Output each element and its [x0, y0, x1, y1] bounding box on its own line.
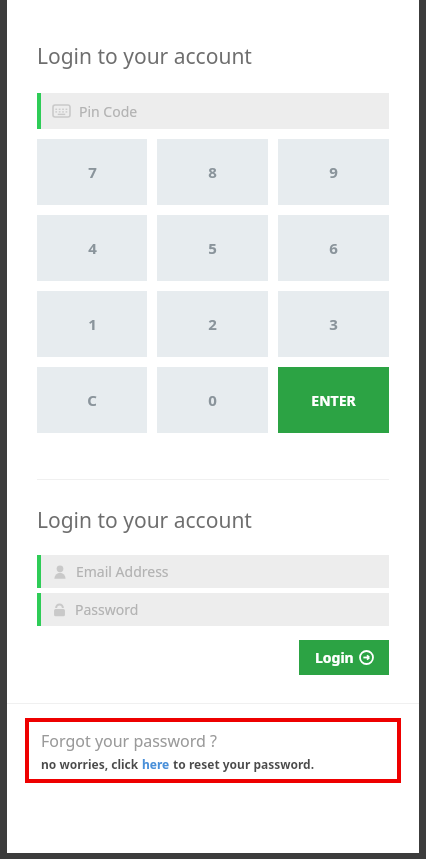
- staticText: 7: [88, 162, 97, 182]
- button[interactable]: C: [37, 367, 147, 433]
- staticText: to reset your password.: [170, 756, 315, 772]
- button[interactable]: 2: [157, 291, 268, 357]
- staticText: Login to your account: [37, 506, 252, 535]
- staticText: 6: [329, 238, 338, 258]
- staticText: Forgot your password ?: [41, 730, 218, 752]
- button[interactable]: here: [142, 756, 170, 772]
- button[interactable]: 3: [278, 291, 389, 357]
- staticText: 5: [208, 238, 217, 258]
- staticText: Login to your account: [37, 42, 252, 71]
- staticText: 3: [329, 314, 338, 334]
- staticText: 2: [208, 314, 217, 334]
- button[interactable]: Email Address: [37, 555, 389, 588]
- button[interactable]: 1: [37, 291, 147, 357]
- button[interactable]: 9: [278, 139, 389, 205]
- button[interactable]: Login: [299, 640, 389, 675]
- button[interactable]: 8: [157, 139, 268, 205]
- button[interactable]: Forgot your password ?: [41, 722, 397, 779]
- staticText: no worries, click: [41, 756, 142, 772]
- button[interactable]: Password: [37, 593, 389, 626]
- staticText: Password: [75, 600, 139, 619]
- staticText: ENTER: [311, 391, 356, 410]
- staticText: Pin Code: [79, 102, 138, 121]
- staticText: C: [87, 390, 97, 410]
- staticText: 8: [208, 162, 217, 182]
- button[interactable]: 7: [37, 139, 147, 205]
- staticText: 1: [88, 314, 97, 334]
- staticText: 9: [329, 162, 338, 182]
- staticText: 0: [208, 390, 217, 410]
- button[interactable]: 4: [37, 215, 147, 281]
- staticText: Login: [315, 648, 354, 667]
- staticText: 4: [88, 238, 97, 258]
- button[interactable]: 5: [157, 215, 268, 281]
- button[interactable]: 0: [157, 367, 268, 433]
- button[interactable]: ENTER: [278, 367, 389, 433]
- button[interactable]: Pin Code: [37, 93, 389, 129]
- staticText: Email Address: [76, 562, 169, 581]
- button[interactable]: 6: [278, 215, 389, 281]
